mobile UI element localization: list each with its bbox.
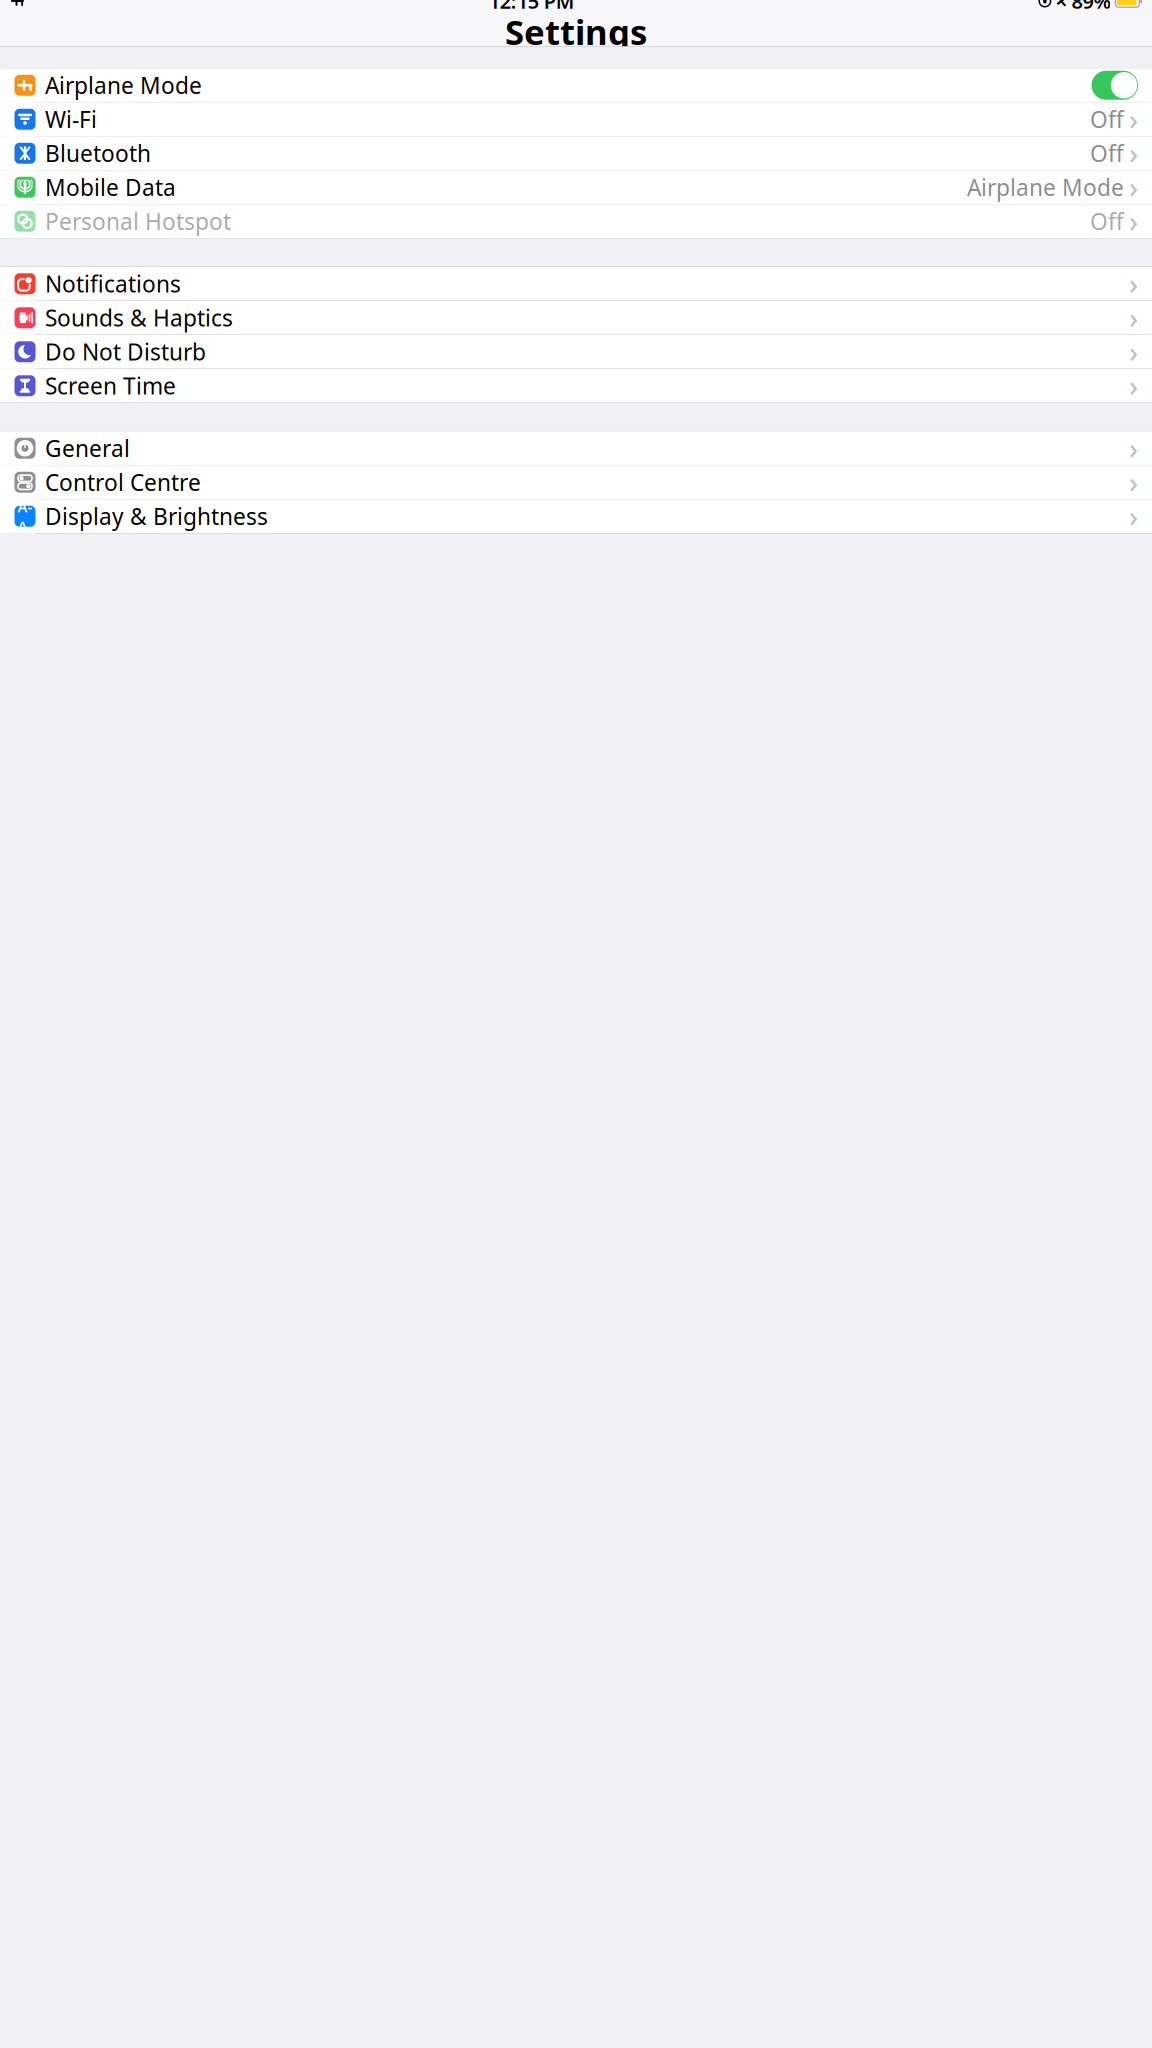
staticText: › — [1129, 169, 1138, 206]
staticText: › — [1129, 203, 1138, 240]
button[interactable]: Mobile Data — [0, 170, 1152, 204]
staticText: Airplane Mode — [45, 70, 202, 100]
staticText: › — [1129, 299, 1138, 336]
button[interactable]: Bluetooth — [0, 136, 1152, 170]
staticText: › — [1129, 101, 1138, 138]
staticText: Bluetooth — [45, 138, 151, 168]
staticText: › — [1129, 367, 1138, 404]
staticText: Display & Brightness — [45, 501, 268, 531]
staticText: Notifications — [45, 269, 181, 299]
staticText: Sounds & Haptics — [45, 303, 233, 333]
staticText: Off — [1090, 206, 1124, 236]
button[interactable]: AA — [0, 499, 1152, 533]
staticText: › — [1129, 333, 1138, 370]
staticText: Settings — [505, 8, 647, 54]
staticText: Airplane Mode — [967, 172, 1124, 202]
button[interactable]: Screen Time — [0, 369, 1152, 402]
staticText: 89% — [1071, 0, 1111, 14]
staticText: Off — [1090, 104, 1124, 134]
button[interactable]: Airplane Mode — [0, 68, 1152, 102]
staticText: Personal Hotspot — [45, 206, 231, 236]
button[interactable]: Wi-Fi — [0, 102, 1152, 136]
button[interactable]: Notifications — [0, 267, 1152, 300]
staticText: Control Centre — [45, 467, 201, 497]
staticText: › — [1129, 498, 1138, 535]
staticText: › — [1129, 430, 1138, 467]
button[interactable]: Do Not Disturb — [0, 335, 1152, 368]
staticText: › — [1129, 265, 1138, 302]
staticText: › — [1129, 464, 1138, 501]
button[interactable]: Sounds & Haptics — [0, 301, 1152, 334]
staticText: 12:15 PM — [489, 0, 575, 14]
staticText: Off — [1090, 138, 1124, 168]
button[interactable]: Control Centre — [0, 465, 1152, 499]
staticText: General — [45, 433, 130, 463]
staticText: Screen Time — [45, 371, 176, 401]
button[interactable]: Personal Hotspot — [0, 204, 1152, 238]
staticText: AA — [17, 497, 32, 536]
staticText: Mobile Data — [45, 172, 176, 202]
staticText: Wi-Fi — [45, 104, 97, 134]
staticText: › — [1129, 135, 1138, 172]
button[interactable]: General — [0, 431, 1152, 465]
staticText: Do Not Disturb — [45, 337, 206, 367]
